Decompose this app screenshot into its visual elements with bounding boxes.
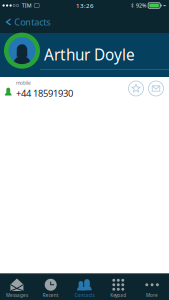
button[interactable]: Messages [0,274,34,300]
button[interactable]: Contacts [0,11,56,33]
staticText: TIM [22,2,32,9]
button[interactable]: More [135,274,169,300]
button[interactable]: Contacts [68,274,101,300]
staticText: Messages [6,292,28,298]
button[interactable]: Keypad [101,274,135,300]
button[interactable]: Add to Favourites [126,77,146,100]
staticText: Keypad [110,292,126,298]
staticText: 92% [136,2,146,9]
staticText: Recent [43,292,59,298]
staticText: Arthur Doyle [44,44,135,65]
staticText: Contacts [14,16,50,28]
staticText: +44 18591930 [16,87,73,99]
staticText: More [146,292,158,298]
staticText: ⌁ [163,2,166,9]
button[interactable]: Send Message [146,77,166,100]
staticText: 13:26 [76,1,94,10]
staticText: Contacts [74,292,94,298]
staticText: mobile [16,80,31,86]
button[interactable]: Recent [34,274,68,300]
